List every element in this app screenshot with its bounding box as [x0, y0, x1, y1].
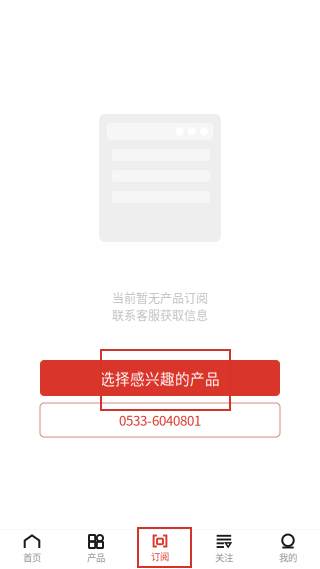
staticText: 产品: [87, 550, 105, 564]
staticText: 我的: [279, 550, 297, 564]
staticText: 订阅: [151, 549, 169, 563]
button[interactable]: 我的: [256, 529, 320, 569]
button[interactable]: 0533-6040801: [40, 403, 280, 437]
button[interactable]: 产品: [64, 529, 128, 569]
staticText: 首页: [23, 550, 41, 564]
button[interactable]: 关注: [192, 529, 256, 569]
button[interactable]: 首页: [0, 529, 64, 569]
button[interactable]: 订阅: [128, 529, 192, 569]
button[interactable]: 选择感兴趣的产品: [40, 360, 280, 396]
staticText: 联系客服获取信息: [112, 306, 208, 324]
staticText: 0533-6040801: [119, 410, 201, 430]
staticText: 关注: [215, 550, 233, 564]
staticText: 选择感兴趣的产品: [100, 367, 220, 389]
staticText: 当前暂无产品订阅: [112, 289, 208, 306]
